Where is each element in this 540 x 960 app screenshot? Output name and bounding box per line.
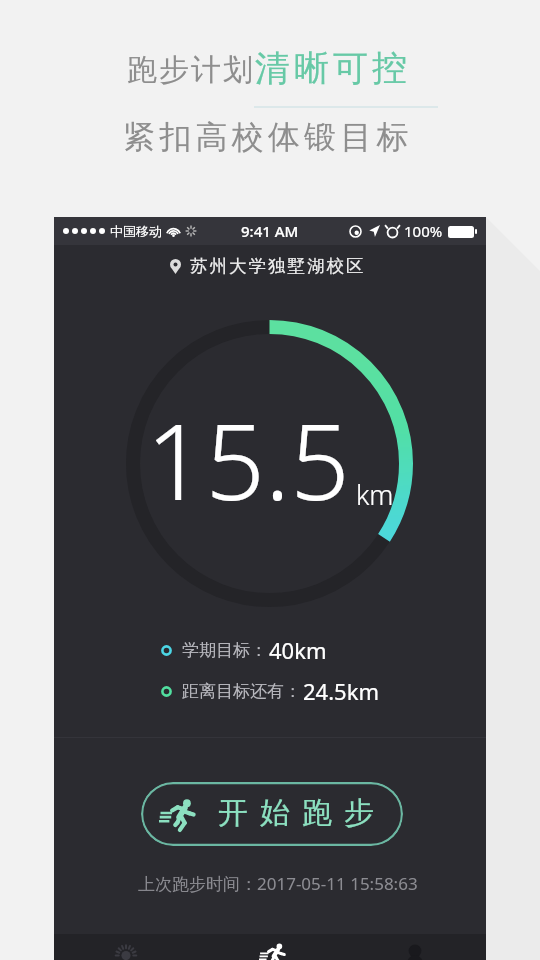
staticText: 学期目标： [182, 640, 267, 661]
button[interactable]: 开始跑步 [141, 782, 403, 846]
staticText: 跑步计划清晰可控 [126, 46, 410, 90]
staticText: 15.5 [146, 389, 350, 531]
staticText: 9:41 AM [241, 221, 299, 241]
button[interactable]: Run [235, 934, 309, 960]
staticText: 距离目标还有： [182, 681, 301, 702]
staticText: 24.5km [303, 676, 379, 706]
staticText: 开始跑步 [212, 794, 380, 832]
staticText: 上次跑步时间：2017-05-11 15:58:63 [138, 872, 486, 895]
staticText: 40km [269, 635, 327, 665]
staticText: 100% [404, 221, 443, 241]
button[interactable]: Settings [89, 934, 163, 960]
staticText: 中国移动 [110, 223, 162, 239]
staticText: km [356, 476, 394, 513]
staticText: 苏州大学独墅湖校区 [190, 255, 366, 277]
staticText: 紧扣高校体锻目标 [123, 117, 413, 157]
